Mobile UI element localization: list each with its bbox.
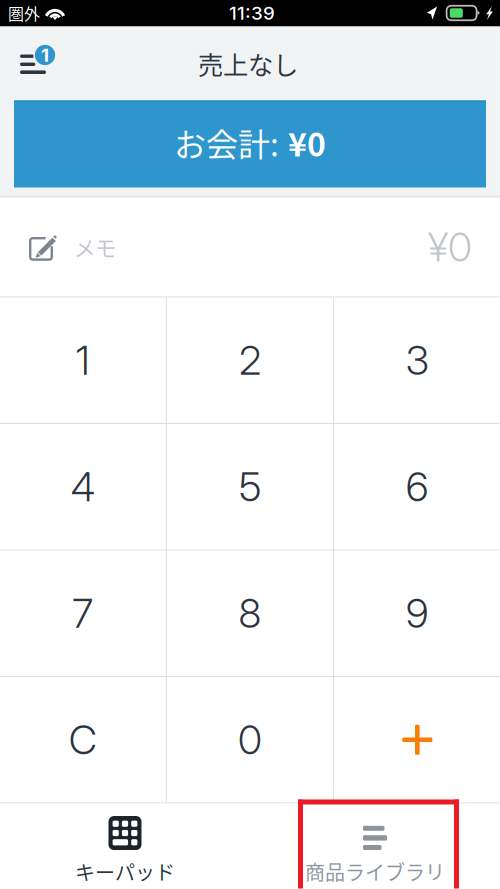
button[interactable]: 商品ライブラリ <box>250 803 500 889</box>
staticText: C <box>69 716 97 764</box>
button[interactable]: 9 <box>334 550 500 676</box>
button[interactable]: 3 <box>334 297 500 423</box>
button[interactable]: 8 <box>167 550 333 676</box>
staticText: 3 <box>406 336 429 384</box>
staticText: キーパッド <box>75 857 175 886</box>
button[interactable]: 6 <box>334 424 500 549</box>
staticText: 6 <box>406 463 429 511</box>
staticText: 11:39 <box>229 2 275 24</box>
button[interactable]: 5 <box>167 424 333 549</box>
button[interactable]: Open tickets <box>0 26 74 100</box>
button[interactable]: 1 <box>0 297 166 423</box>
staticText: 1 <box>41 44 49 66</box>
staticText: 2 <box>239 336 261 384</box>
staticText: 0 <box>238 716 262 764</box>
staticText: 7 <box>72 589 93 637</box>
button[interactable]: 2 <box>167 297 333 423</box>
staticText: お会計: <box>174 119 279 166</box>
staticText: 8 <box>238 589 261 637</box>
button[interactable]: 4 <box>0 424 166 549</box>
button[interactable]: メモ <box>0 197 500 296</box>
staticText: ¥0 <box>428 223 472 271</box>
button[interactable]: 0 <box>167 677 333 802</box>
button[interactable]: C <box>0 677 166 802</box>
staticText: 4 <box>71 463 95 511</box>
button[interactable]: キーパッド <box>0 803 250 889</box>
button[interactable] <box>334 677 500 802</box>
staticText: 商品ライブラリ <box>305 857 445 886</box>
staticText: 圏外 <box>8 1 40 25</box>
button[interactable]: お会計: <box>14 100 486 187</box>
staticText: 5 <box>239 463 261 511</box>
staticText: ¥0 <box>288 119 326 166</box>
button[interactable]: 7 <box>0 550 166 676</box>
staticText: 1 <box>76 336 90 384</box>
staticText: メモ <box>74 232 116 262</box>
staticText: 9 <box>406 589 429 637</box>
staticText: 売上なし <box>198 45 298 82</box>
